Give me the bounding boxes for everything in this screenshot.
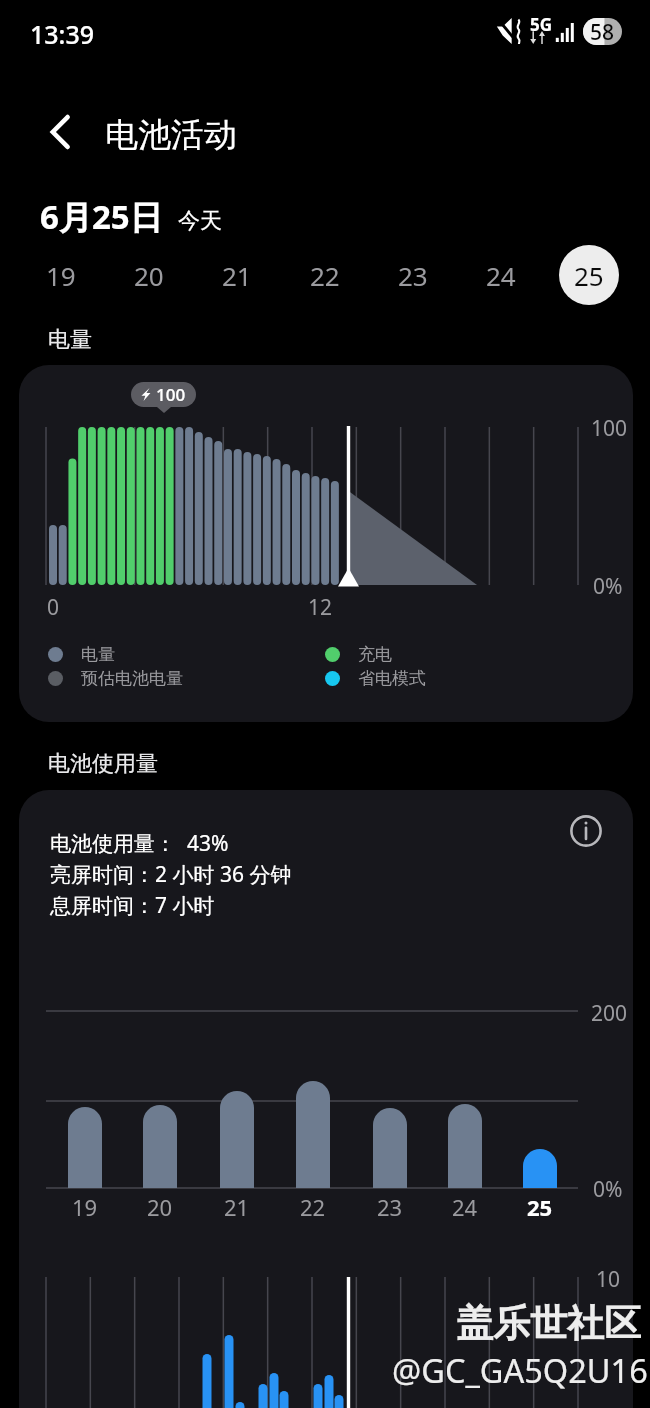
- staticText: 0: [47, 593, 60, 622]
- button[interactable]: Back: [34, 106, 86, 158]
- staticText: 预估电池电量: [81, 668, 183, 689]
- staticText: 20: [134, 258, 164, 293]
- staticText: 21: [224, 1192, 250, 1222]
- staticText: 盖乐世社区: [456, 1300, 641, 1347]
- staticText: 23: [398, 258, 428, 293]
- staticText: 19: [46, 258, 76, 293]
- staticText: 19: [72, 1192, 98, 1222]
- button[interactable]: 19: [31, 245, 91, 305]
- staticText: 5G: [530, 13, 553, 36]
- staticText: 25: [574, 258, 604, 293]
- button[interactable]: 24: [471, 245, 531, 305]
- staticText: 6月25日: [40, 194, 163, 239]
- button[interactable]: 23: [383, 245, 443, 305]
- button[interactable]: 25: [559, 245, 619, 305]
- staticText: 0%: [593, 572, 623, 601]
- staticText: 充电: [358, 644, 392, 665]
- staticText: @GC_GA5Q2U16: [392, 1348, 648, 1392]
- staticText: 100: [591, 414, 628, 443]
- staticText: 息屏时间：7 小时: [50, 891, 215, 920]
- staticText: 22: [310, 258, 340, 293]
- button[interactable]: 21: [207, 245, 267, 305]
- staticText: 电池活动: [105, 114, 237, 156]
- staticText: 21: [222, 258, 252, 293]
- staticText: 今天: [178, 207, 222, 235]
- staticText: 13:39: [30, 17, 95, 51]
- staticText: 亮屏时间：2 小时 36 分钟: [50, 860, 292, 889]
- staticText: 24: [486, 258, 516, 293]
- staticText: 22: [300, 1192, 326, 1222]
- staticText: 省电模式: [358, 668, 426, 689]
- button[interactable]: Info: [564, 809, 608, 853]
- staticText: 10: [596, 1265, 621, 1294]
- staticText: 0%: [593, 1175, 623, 1204]
- staticText: 100: [156, 383, 186, 406]
- staticText: 58: [590, 18, 615, 45]
- staticText: 12: [308, 593, 333, 622]
- button[interactable]: 22: [295, 245, 355, 305]
- staticText: 电池使用量： 43%: [50, 829, 229, 858]
- staticText: 24: [452, 1192, 478, 1222]
- staticText: 25: [527, 1192, 553, 1222]
- staticText: 200: [591, 999, 628, 1028]
- button[interactable]: 20: [119, 245, 179, 305]
- staticText: 电量: [81, 644, 115, 665]
- staticText: 23: [377, 1192, 403, 1222]
- staticText: 电量: [48, 326, 92, 354]
- staticText: 电池使用量: [48, 750, 158, 778]
- staticText: 20: [147, 1192, 173, 1222]
